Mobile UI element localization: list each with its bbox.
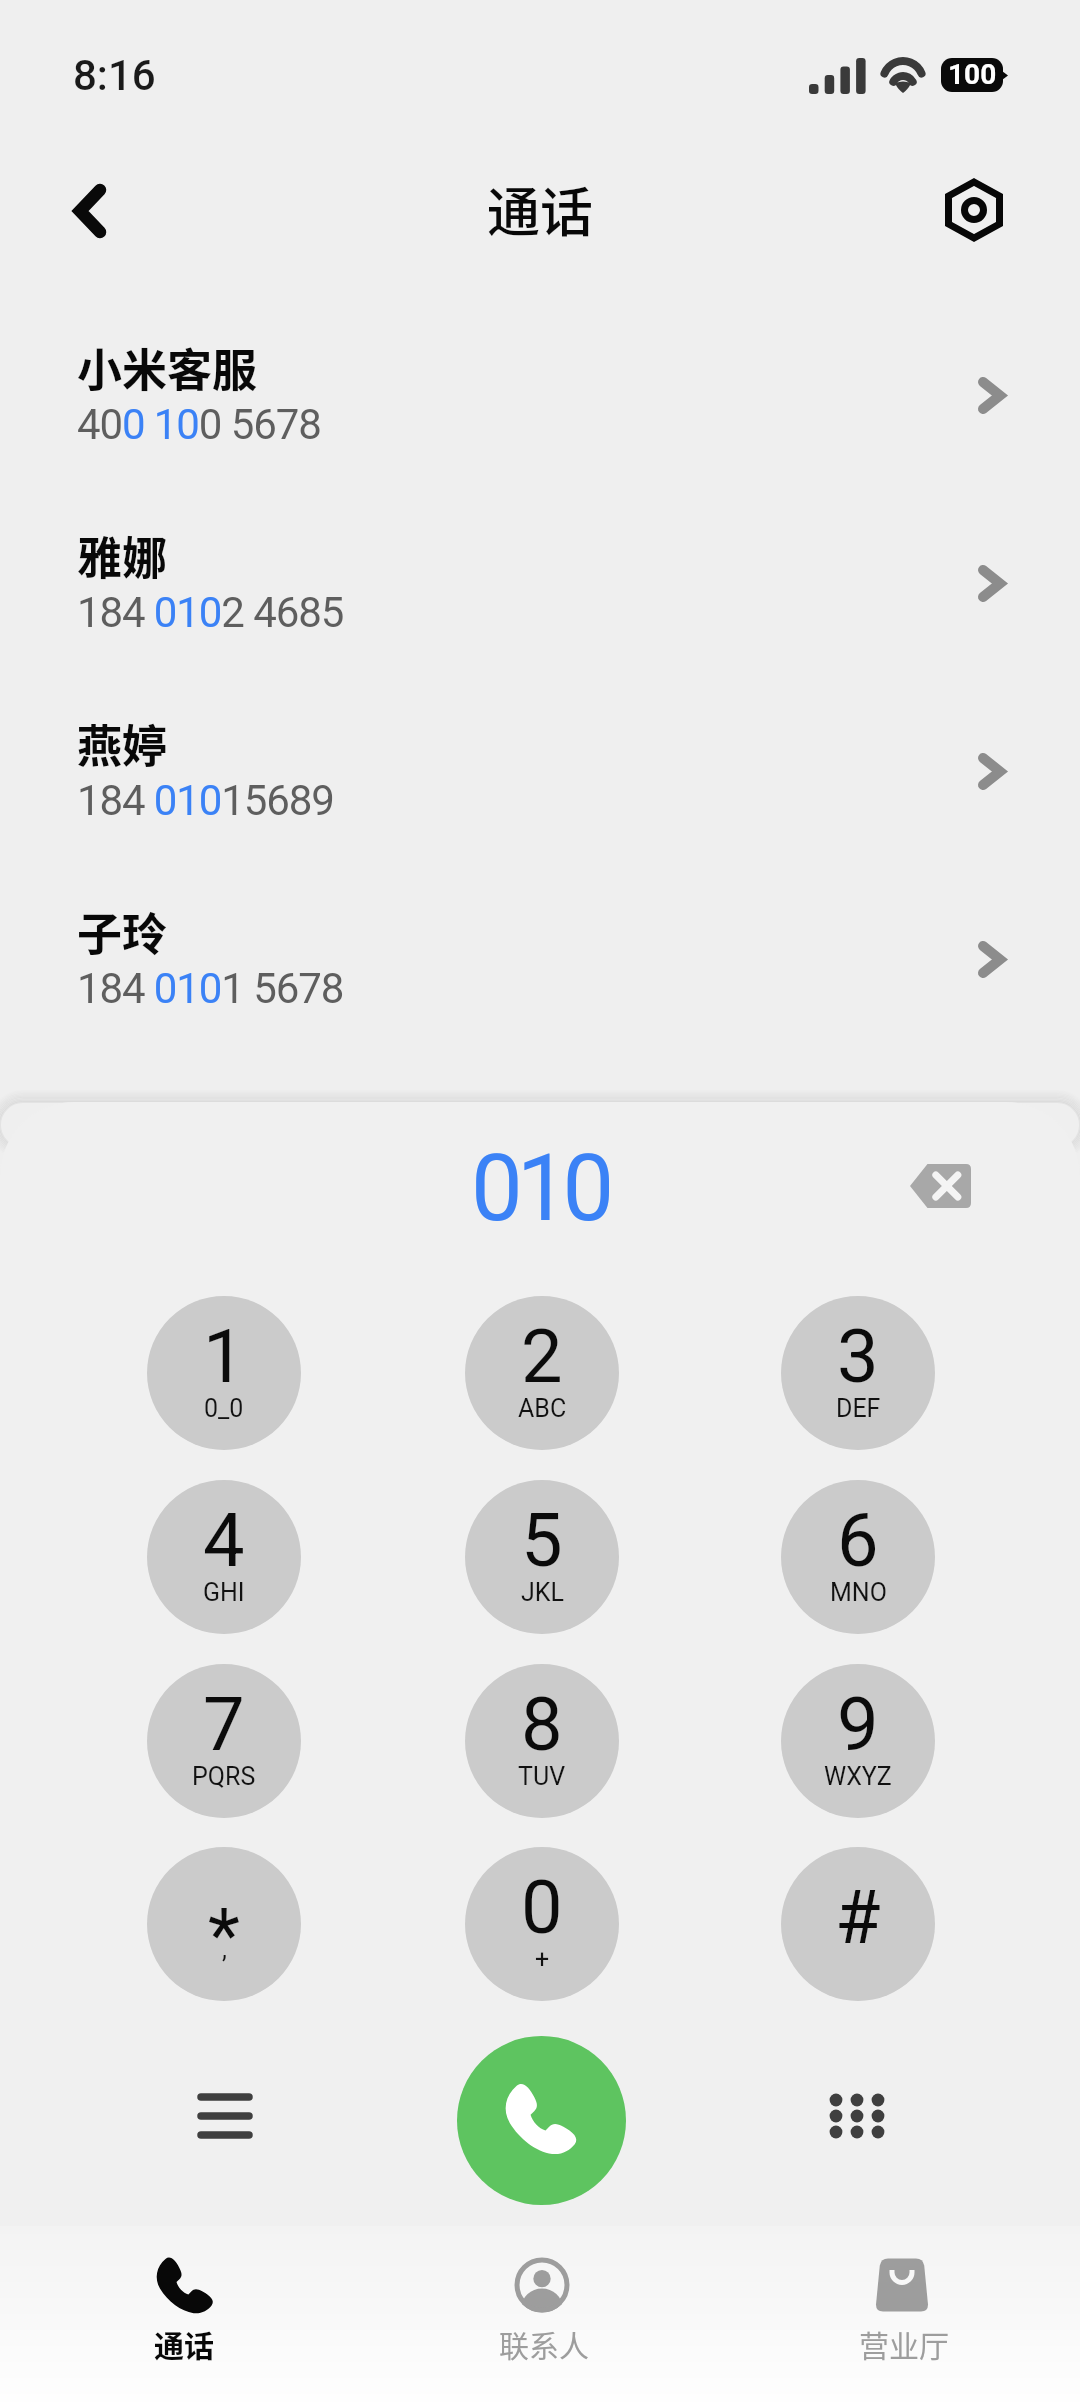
button[interactable]: Back bbox=[40, 161, 140, 261]
staticText: 8 bbox=[521, 1681, 563, 1768]
staticText: 4 bbox=[203, 1497, 245, 1584]
staticText: DEF bbox=[836, 1394, 881, 1423]
staticText: 小米客服 bbox=[77, 335, 258, 400]
button[interactable]: 小米客服 bbox=[0, 330, 1080, 460]
staticText: TUV bbox=[518, 1762, 566, 1791]
button[interactable]: * bbox=[147, 1847, 301, 2001]
button[interactable]: More options bbox=[802, 2061, 912, 2171]
staticText: 184 0102 4685 bbox=[77, 588, 344, 637]
button[interactable]: 1 bbox=[147, 1296, 301, 1450]
button[interactable]: 8 bbox=[465, 1664, 619, 1818]
staticText: ABC bbox=[518, 1394, 567, 1423]
staticText: , bbox=[222, 1935, 227, 1964]
staticText: 雅娜 bbox=[77, 523, 168, 588]
staticText: 400 100 5678 bbox=[77, 400, 321, 449]
staticText: 通话 bbox=[487, 171, 593, 248]
button[interactable]: 9 bbox=[781, 1664, 935, 1818]
button[interactable]: 6 bbox=[781, 1480, 935, 1634]
staticText: 子玲 bbox=[77, 899, 168, 964]
staticText: 联系人 bbox=[499, 2322, 589, 2365]
button[interactable]: Call bbox=[457, 2036, 626, 2205]
button[interactable]: 2 bbox=[465, 1296, 619, 1450]
staticText: 184 0101 5678 bbox=[77, 964, 344, 1013]
button[interactable]: 3 bbox=[781, 1296, 935, 1450]
button[interactable]: 0 bbox=[465, 1847, 619, 2001]
button[interactable]: Delete bbox=[885, 1131, 995, 1241]
button[interactable]: 联系人 bbox=[360, 2226, 720, 2402]
staticText: WXYZ bbox=[824, 1762, 892, 1791]
button[interactable]: 通话 bbox=[0, 2226, 360, 2402]
staticText: * bbox=[208, 1892, 240, 1979]
staticText: 9 bbox=[837, 1681, 879, 1768]
button[interactable]: 营业厅 bbox=[720, 2226, 1080, 2402]
button[interactable]: 7 bbox=[147, 1664, 301, 1818]
staticText: 8:16 bbox=[73, 51, 156, 100]
staticText: 184 01015689 bbox=[77, 776, 334, 825]
button[interactable]: Settings bbox=[924, 160, 1024, 260]
staticText: 100 bbox=[948, 58, 997, 91]
staticText: 0 bbox=[521, 1864, 563, 1951]
button[interactable]: 4 bbox=[147, 1480, 301, 1634]
button[interactable]: 燕婷 bbox=[0, 706, 1080, 836]
staticText: 通话 bbox=[154, 2322, 214, 2365]
button[interactable]: Call log bbox=[170, 2061, 280, 2171]
staticText: 6 bbox=[837, 1497, 879, 1584]
staticText: 010 bbox=[471, 1135, 609, 1243]
staticText: + bbox=[535, 1945, 550, 1974]
staticText: 2 bbox=[521, 1313, 563, 1400]
staticText: 1 bbox=[203, 1313, 245, 1400]
staticText: 3 bbox=[837, 1313, 879, 1400]
staticText: 营业厅 bbox=[859, 2322, 949, 2365]
button[interactable]: # bbox=[781, 1847, 935, 2001]
button[interactable]: 子玲 bbox=[0, 894, 1080, 1024]
staticText: # bbox=[835, 1874, 881, 1961]
staticText: 7 bbox=[203, 1681, 245, 1768]
staticText: JKL bbox=[521, 1578, 564, 1607]
button[interactable]: 5 bbox=[465, 1480, 619, 1634]
staticText: GHI bbox=[203, 1578, 245, 1607]
button[interactable]: 雅娜 bbox=[0, 518, 1080, 648]
staticText: 5 bbox=[521, 1497, 563, 1584]
staticText: 0_0 bbox=[204, 1394, 244, 1423]
staticText: MNO bbox=[830, 1578, 887, 1607]
staticText: PQRS bbox=[192, 1762, 256, 1791]
staticText: 燕婷 bbox=[77, 711, 168, 776]
